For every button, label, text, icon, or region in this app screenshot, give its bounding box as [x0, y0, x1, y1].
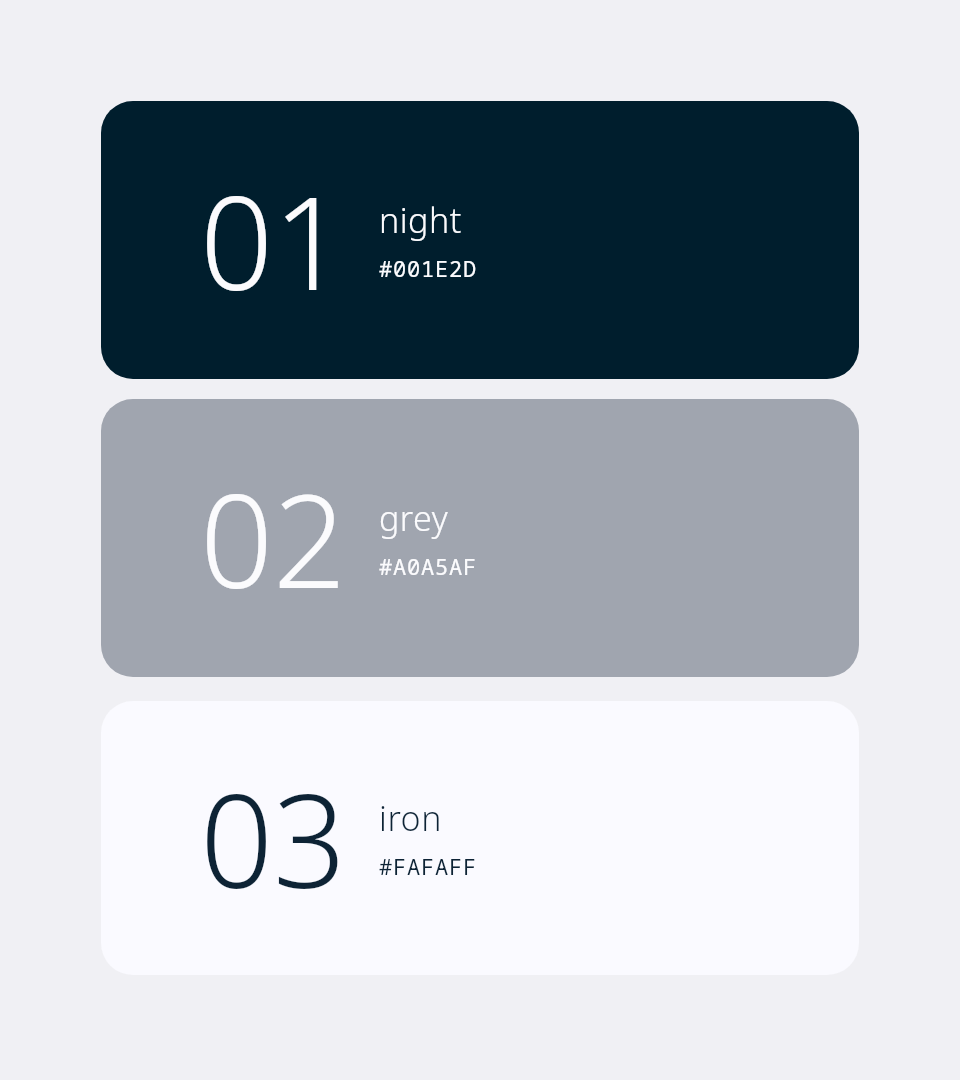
staticText: 01 — [200, 153, 347, 327]
staticText: #001E2D — [379, 253, 478, 283]
staticText: night — [379, 197, 462, 243]
staticText: iron — [379, 795, 442, 841]
staticText: 02 — [200, 451, 347, 625]
button[interactable]: 03 — [101, 701, 859, 975]
button[interactable]: 02 — [101, 399, 859, 677]
staticText: #FAFAFF — [379, 851, 478, 881]
button[interactable]: 01 — [101, 101, 859, 379]
staticText: #A0A5AF — [379, 551, 478, 581]
staticText: 03 — [200, 751, 347, 925]
staticText: grey — [379, 495, 449, 541]
